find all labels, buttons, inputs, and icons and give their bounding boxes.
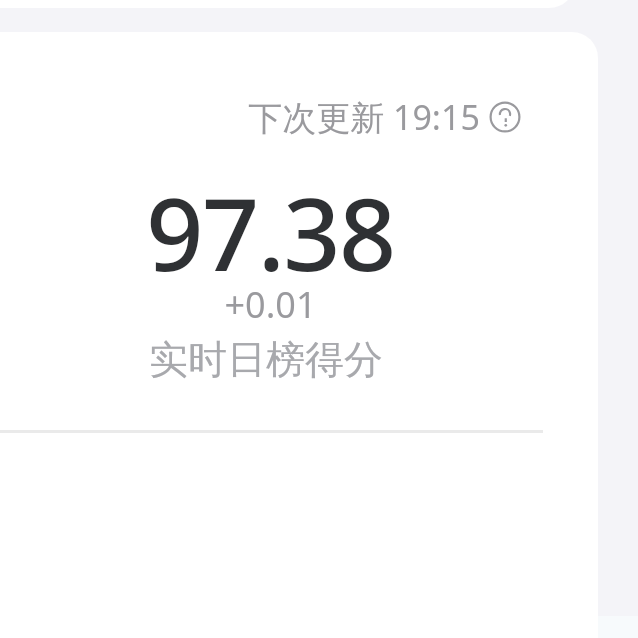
staticText: 97.38: [146, 164, 395, 280]
staticText: 实时日榜得分: [149, 335, 383, 384]
button[interactable]: 下次更新 19:15: [244, 90, 525, 144]
staticText: 下次更新 19:15: [248, 94, 480, 140]
staticText: +0.01: [224, 280, 317, 326]
button[interactable]: 帮助: [489, 101, 521, 133]
